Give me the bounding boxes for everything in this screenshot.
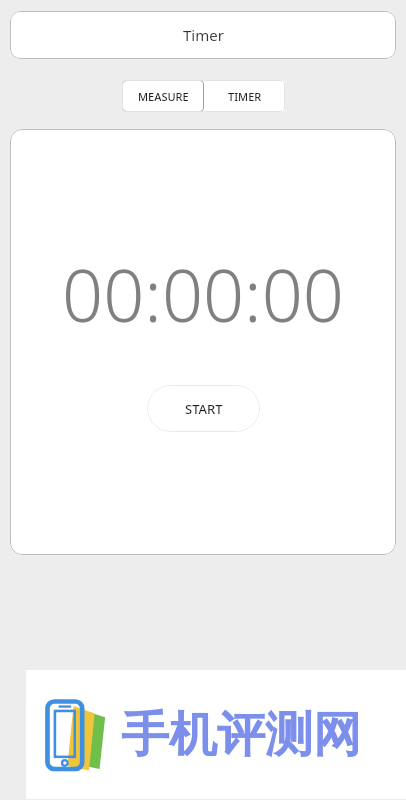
staticText: 00:00:00 xyxy=(62,245,344,343)
staticText: Timer xyxy=(183,25,224,45)
button[interactable]: MEASURE xyxy=(122,80,204,112)
button[interactable]: START xyxy=(147,385,260,432)
button[interactable]: Timer xyxy=(10,11,396,59)
staticText: START xyxy=(185,400,223,418)
button[interactable]: TIMER xyxy=(204,80,285,112)
staticText: MEASURE xyxy=(138,89,189,104)
staticText: TIMER xyxy=(228,89,262,104)
staticText: 手机评测网 xyxy=(121,705,361,765)
